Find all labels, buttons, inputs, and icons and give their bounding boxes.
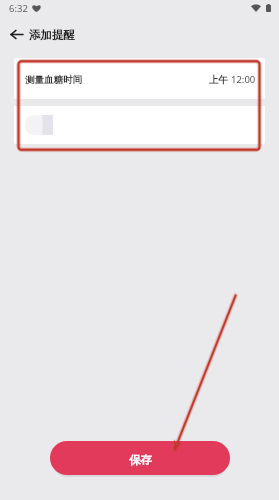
button[interactable]: Toggle reminder — [25, 115, 53, 135]
staticText: 12:00 — [231, 73, 256, 86]
staticText: 测量血糖时间 — [25, 74, 82, 86]
staticText: 添加提醒 — [29, 28, 75, 42]
staticText: 6:32 — [9, 2, 28, 15]
button[interactable]: Back — [4, 22, 28, 46]
staticText: 上午 — [209, 73, 231, 86]
button[interactable]: 测量血糖时间 — [14, 58, 265, 99]
button[interactable]: 保存 — [50, 441, 230, 475]
staticText: 保存 — [129, 453, 152, 467]
